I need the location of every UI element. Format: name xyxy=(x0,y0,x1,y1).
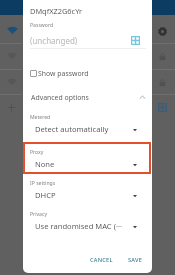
staticText: CANCEL xyxy=(90,256,113,264)
staticText: Detect automatically xyxy=(35,124,109,134)
staticText: IP settings xyxy=(30,180,56,187)
staticText: Privacy xyxy=(30,211,47,218)
staticText: Password xyxy=(30,22,54,29)
button[interactable]: Advanced options xyxy=(23,90,152,104)
staticText: Use randomised MAC (··· xyxy=(35,221,123,231)
button[interactable]: Show password xyxy=(30,68,110,79)
button[interactable] xyxy=(23,175,152,201)
button[interactable]: Scan QR code xyxy=(131,36,140,45)
button[interactable]: SAVE xyxy=(127,253,144,267)
staticText: Advanced options xyxy=(31,93,89,102)
staticText: DHCP xyxy=(35,190,56,200)
staticText: Proxy xyxy=(30,149,44,156)
staticText: None xyxy=(35,159,55,169)
staticText: SAVE xyxy=(128,256,143,264)
staticText: (unchanged) xyxy=(30,35,78,46)
button[interactable]: CANCEL xyxy=(90,253,113,267)
button[interactable] xyxy=(23,109,152,135)
button[interactable] xyxy=(23,144,152,170)
staticText: DMqfXZ2G6cYr xyxy=(30,6,83,16)
staticText: Metered xyxy=(30,114,51,121)
staticText: Show password xyxy=(38,69,89,78)
button[interactable] xyxy=(23,206,152,232)
